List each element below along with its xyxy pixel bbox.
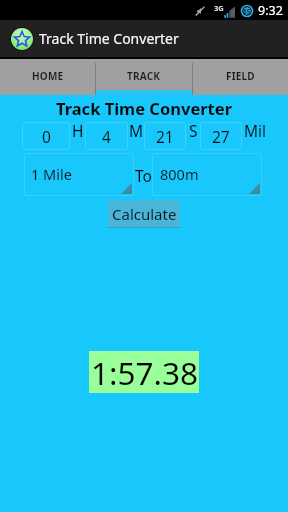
staticText: Calculate xyxy=(112,204,177,224)
staticText: To xyxy=(135,165,152,186)
button[interactable]: 800m xyxy=(152,153,262,196)
staticText: TRACK xyxy=(127,69,161,83)
staticText: Mil xyxy=(244,120,267,141)
staticText: 800m xyxy=(160,164,199,184)
staticText: 0 xyxy=(42,126,51,147)
staticText: FIELD xyxy=(226,69,255,83)
staticText: S xyxy=(189,120,198,141)
staticText: Track Time Converter xyxy=(0,97,288,119)
button[interactable]: 0 xyxy=(22,122,70,150)
button[interactable]: 21 xyxy=(144,122,186,150)
staticText: 3G xyxy=(214,3,224,13)
button[interactable]: 1 Mile xyxy=(24,153,134,196)
button[interactable]: TRACK xyxy=(96,59,192,95)
staticText: 9:32 xyxy=(258,2,283,19)
button[interactable]: 4 xyxy=(85,122,128,150)
button[interactable]: HOME xyxy=(0,59,95,95)
staticText: 4 xyxy=(102,126,111,147)
staticText: HOME xyxy=(32,69,64,83)
staticText: 21 xyxy=(156,126,174,147)
staticText: M xyxy=(129,120,144,141)
button[interactable]: Calculate xyxy=(108,200,180,228)
staticText: Track Time Converter xyxy=(39,29,179,48)
staticText: 1:57.38 xyxy=(91,351,198,393)
staticText: 1 Mile xyxy=(31,164,72,184)
staticText: H xyxy=(72,120,84,141)
staticText: 27 xyxy=(212,126,230,147)
button[interactable]: FIELD xyxy=(193,59,288,95)
staticText: 85 xyxy=(243,7,251,16)
button[interactable]: 27 xyxy=(200,122,242,150)
